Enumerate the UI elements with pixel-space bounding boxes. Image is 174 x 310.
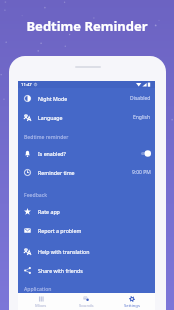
button[interactable]: Rate app [18,201,155,221]
button[interactable]: Reminder time [18,162,155,182]
staticText: Language [38,114,63,121]
staticText: 11:47 [21,82,32,88]
button[interactable]: Report a problem [18,220,155,240]
staticText: 9:00 PM [132,169,151,176]
staticText: Reminder time [38,169,75,176]
staticText: Rate app [38,208,60,215]
button[interactable]: Is enabled? [18,143,155,163]
staticText: Help with translation [38,248,90,255]
staticText: Application [24,286,52,293]
staticText: Bedtime reminder [24,134,69,141]
staticText: Bedtime Reminder [0,17,174,35]
button[interactable]: Settings [109,293,155,310]
staticText: Sounds [79,303,94,309]
button[interactable]: Night Mode [18,88,155,108]
staticText: Night Mode [38,95,68,102]
button[interactable]: Help with translation [18,241,155,261]
button[interactable]: Share with friends [18,260,155,280]
staticText: Feedback [24,192,48,199]
button[interactable]: Mixes [18,293,63,310]
staticText: Settings [124,303,140,309]
staticText: Share with friends [38,267,83,274]
staticText: Disabled [130,95,151,102]
staticText: Is enabled? [38,150,66,157]
staticText: English [133,114,151,121]
staticText: Report a problem [38,227,82,234]
button[interactable]: Language [18,107,155,127]
staticText: Mixes [35,303,47,309]
button[interactable]: Sounds [63,293,109,310]
